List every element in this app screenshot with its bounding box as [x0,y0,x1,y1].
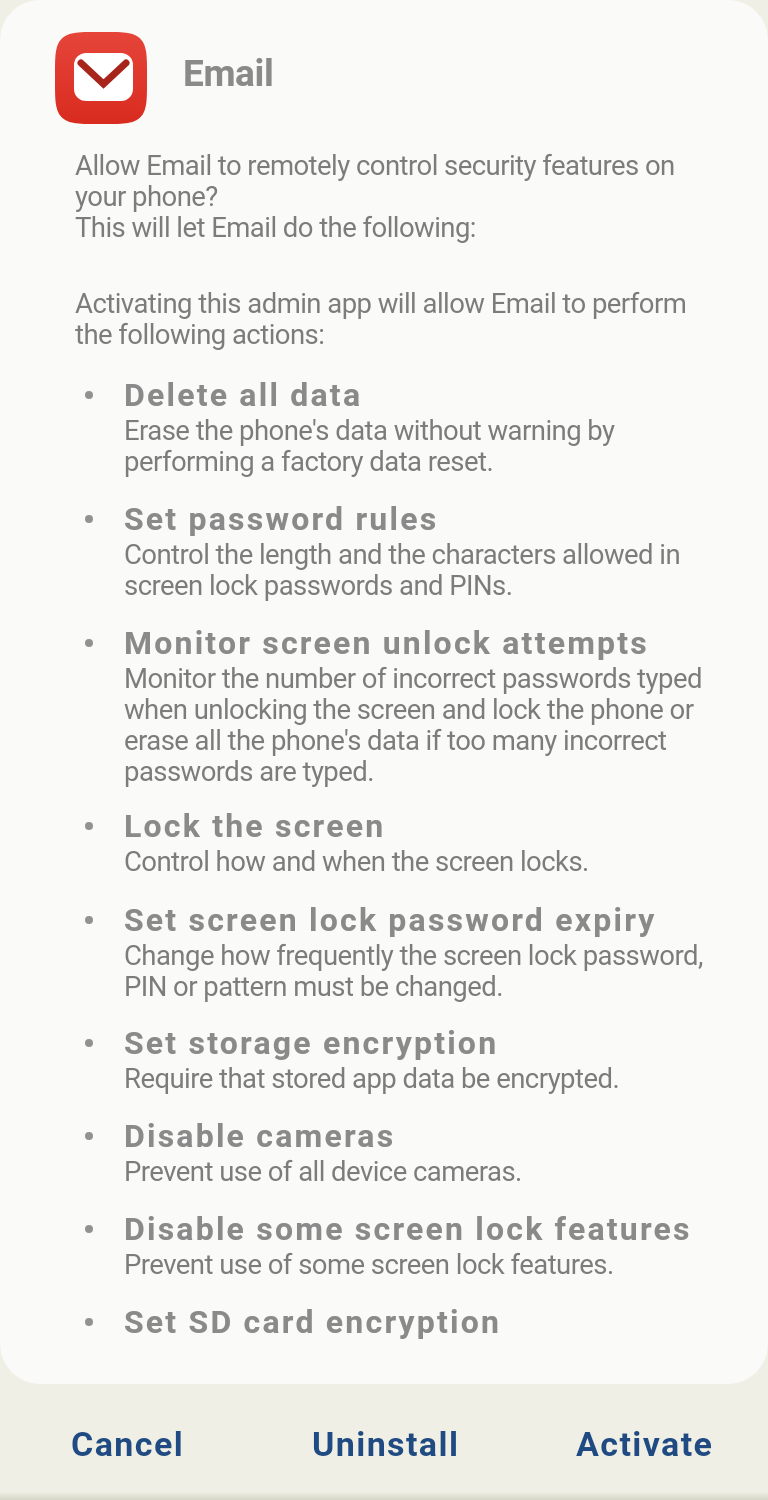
staticText: Activating this admin app will allow Ema… [75,287,687,319]
button[interactable]: Cancel [51,1404,205,1484]
staticText: PIN or pattern must be changed. [124,970,503,1002]
staticText: Require that stored app data be encrypte… [124,1062,620,1094]
staticText: performing a factory data reset. [124,445,494,477]
staticText: erase all the phone's data if too many i… [124,724,667,756]
staticText: Monitor screen unlock attempts [124,624,649,662]
staticText: Set storage encryption [124,1024,499,1062]
staticText: Control how and when the screen locks. [124,845,589,877]
staticText: Email [183,52,274,95]
staticText: Uninstall [312,1424,460,1464]
staticText: Erase the phone's data without warning b… [124,414,615,446]
staticText: Set password rules [124,500,439,538]
staticText: the following actions: [75,318,325,350]
staticText: Prevent use of all device cameras. [124,1155,522,1187]
staticText: Prevent use of some screen lock features… [124,1248,614,1280]
staticText: Lock the screen [124,807,386,845]
staticText: Change how frequently the screen lock pa… [124,939,703,971]
staticText: Allow Email to remotely control security… [75,149,675,181]
button[interactable]: Activate [556,1404,734,1484]
staticText: screen lock passwords and PINs. [124,569,513,601]
staticText: Monitor the number of incorrect password… [124,662,702,694]
staticText: your phone? [75,180,218,212]
staticText: Set screen lock password expiry [124,901,657,939]
staticText: Delete all data [124,376,363,414]
button[interactable]: Uninstall [292,1404,480,1484]
staticText: This will let Email do the following: [75,211,476,243]
staticText: Activate [576,1424,714,1464]
staticText: Set SD card encryption [124,1303,502,1341]
staticText: when unlocking the screen and lock the p… [124,693,694,725]
staticText: Disable cameras [124,1117,396,1155]
staticText: passwords are typed. [124,755,374,787]
staticText: Disable some screen lock features [124,1210,692,1248]
staticText: Cancel [71,1424,185,1464]
staticText: Control the length and the characters al… [124,538,681,570]
